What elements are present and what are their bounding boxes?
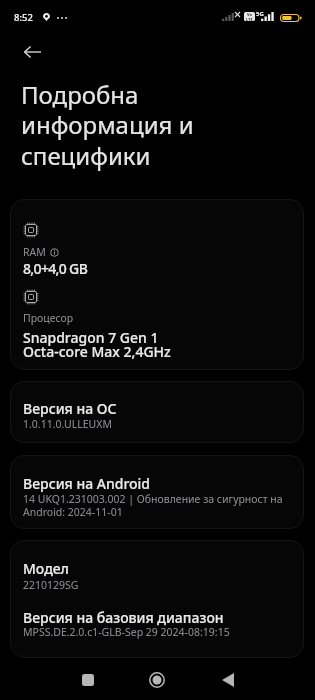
button[interactable]: Back bbox=[18, 38, 46, 66]
staticText: 8,0+4,0 GB bbox=[23, 259, 88, 278]
staticText: LTE bbox=[246, 17, 253, 21]
staticText: Версия на Android bbox=[23, 474, 151, 493]
staticText: Модел bbox=[23, 559, 69, 578]
staticText: 5G bbox=[256, 10, 264, 18]
button[interactable]: Версия на ОС bbox=[10, 381, 304, 443]
staticText: 14 UKQ1.231003.002 | Обновление за сигур… bbox=[23, 492, 291, 519]
button[interactable]: Версия на Android bbox=[10, 455, 304, 529]
button[interactable]: Recent apps bbox=[70, 662, 106, 698]
staticText: 2210129SG bbox=[23, 578, 79, 592]
staticText: RAM bbox=[23, 245, 46, 259]
staticText: Vo bbox=[247, 12, 253, 17]
button[interactable]: RAM bbox=[10, 199, 304, 370]
staticText: Процесор bbox=[23, 311, 74, 325]
staticText: MPSS.DE.2.0.c1-GLB-Sep 29 2024-08:19:15 bbox=[23, 625, 230, 639]
staticText: Snapdragon 7 Gen 1 Octa-core Max 2,4GHz bbox=[23, 328, 171, 361]
button[interactable]: Home bbox=[139, 662, 175, 698]
staticText: Версия на ОС bbox=[23, 399, 117, 418]
staticText: 8:52 bbox=[14, 11, 33, 24]
staticText: 1.0.11.0.ULLEUXM bbox=[23, 417, 112, 431]
button[interactable]: Back bbox=[210, 662, 246, 698]
staticText: Версия на базовия диапазон bbox=[23, 608, 224, 627]
button[interactable]: Модел bbox=[10, 540, 304, 658]
staticText: Подробна информация и специфики bbox=[21, 78, 246, 172]
